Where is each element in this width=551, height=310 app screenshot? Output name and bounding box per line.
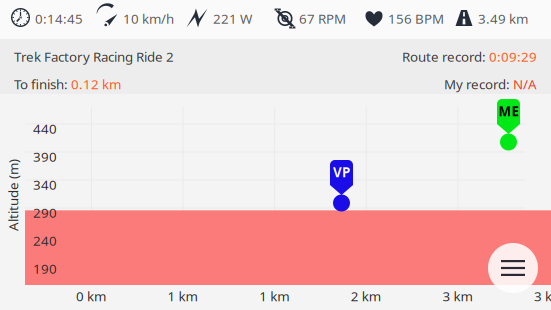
- staticText: My record:: [444, 75, 513, 93]
- staticText: ME: [498, 102, 518, 120]
- staticText: 0:14:45: [35, 10, 83, 27]
- staticText: 240: [33, 232, 57, 249]
- staticText: 3.49 km: [478, 10, 528, 27]
- staticText: To finish:: [14, 75, 71, 93]
- staticText: 1 km: [259, 287, 289, 305]
- staticText: 390: [33, 148, 57, 165]
- staticText: N/A: [513, 75, 537, 93]
- staticText: 2 km: [351, 287, 381, 305]
- staticText: 0 km: [76, 287, 106, 305]
- staticText: 0.12 km: [71, 75, 121, 93]
- staticText: 67 RPM: [299, 10, 346, 27]
- staticText: Trek Factory Racing Ride 2: [14, 48, 174, 65]
- staticText: 190: [33, 260, 57, 277]
- staticText: 440: [33, 120, 57, 137]
- staticText: Route record:: [402, 48, 489, 65]
- staticText: VP: [333, 163, 350, 181]
- staticText: 156 BPM: [388, 10, 444, 27]
- staticText: 3 km: [534, 287, 551, 305]
- button[interactable]: Menu: [488, 243, 538, 293]
- staticText: Altitude (m): [0, 186, 49, 204]
- staticText: 290: [33, 204, 57, 221]
- staticText: 221 W: [213, 10, 252, 27]
- staticText: 340: [33, 176, 57, 193]
- staticText: 0:09:29: [489, 48, 537, 65]
- staticText: 3 km: [442, 287, 472, 305]
- staticText: 10 km/h: [123, 10, 174, 27]
- staticText: 1 km: [168, 287, 198, 305]
